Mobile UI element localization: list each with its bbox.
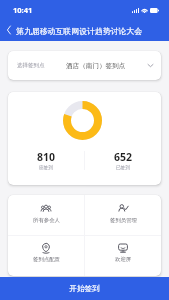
staticText: 已签到 (116, 165, 130, 171)
button[interactable]: 开始签到 (0, 277, 169, 300)
staticText: 欢迎屏 (115, 256, 132, 263)
staticText: 第九届移动互联网设计趋势讨论大会 (16, 26, 143, 36)
button[interactable]: Back (0, 19, 17, 41)
staticText: 810 (37, 150, 56, 164)
staticText: 酒店（南门）签到点 (66, 62, 126, 70)
staticText: 652 (114, 150, 133, 164)
button[interactable]: 选择签到点 (8, 51, 161, 80)
staticText: 应签到 (39, 165, 53, 171)
staticText: 选择签到点 (17, 62, 45, 69)
button[interactable]: 欢迎屏 (85, 236, 161, 276)
staticText: 所有参会人 (33, 217, 60, 224)
staticText: 开始签到 (69, 284, 100, 294)
staticText: 签到点配置 (33, 256, 60, 263)
staticText: 签到员管理 (110, 217, 137, 224)
button[interactable]: 所有参会人 (8, 195, 84, 235)
staticText: 10:41 (13, 5, 33, 15)
button[interactable]: 签到员管理 (85, 195, 161, 235)
button[interactable]: 签到点配置 (8, 236, 84, 276)
